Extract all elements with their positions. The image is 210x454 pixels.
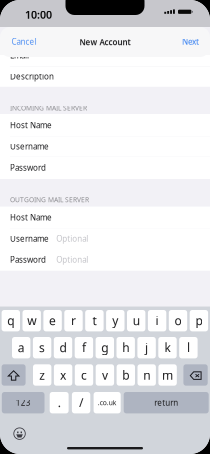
staticText: i xyxy=(156,313,159,329)
button[interactable]: k xyxy=(158,337,177,358)
staticText: e xyxy=(49,313,56,329)
button[interactable]: Description xyxy=(0,66,210,86)
button[interactable]: 123 xyxy=(2,392,44,413)
staticText: c xyxy=(81,367,87,383)
button[interactable]: r xyxy=(64,310,83,331)
staticText: r xyxy=(71,313,76,329)
staticText: o xyxy=(174,313,181,329)
button[interactable]: l xyxy=(179,337,198,358)
button[interactable]: Shift xyxy=(2,364,26,386)
staticText: w xyxy=(27,313,36,329)
staticText: OUTGOING MAIL SERVER xyxy=(10,195,89,204)
staticText: u xyxy=(133,313,140,329)
staticText: Host Name xyxy=(10,120,52,130)
staticText: 10:00 xyxy=(25,8,52,22)
staticText: .co.uk xyxy=(98,398,117,407)
staticText: Optional xyxy=(56,233,88,244)
staticText: Password xyxy=(10,162,46,173)
button[interactable]: b xyxy=(117,364,135,386)
button[interactable]: d xyxy=(54,337,72,358)
button[interactable]: . xyxy=(50,392,69,413)
button[interactable]: Email xyxy=(0,45,210,65)
button[interactable]: n xyxy=(137,364,156,386)
button[interactable]: Emoji keyboard xyxy=(14,428,25,439)
button[interactable]: Username xyxy=(0,136,210,156)
staticText: v xyxy=(102,367,108,383)
button[interactable]: Cancel xyxy=(12,37,52,46)
button[interactable]: f xyxy=(75,337,93,358)
button[interactable]: z xyxy=(33,364,51,386)
staticText: Cancel xyxy=(12,36,37,47)
staticText: x xyxy=(60,367,66,383)
staticText: t xyxy=(92,313,96,329)
staticText: / xyxy=(79,395,83,411)
staticText: return xyxy=(154,397,178,408)
button[interactable]: / xyxy=(72,392,90,413)
button[interactable]: m xyxy=(158,364,177,386)
staticText: h xyxy=(122,340,129,356)
button[interactable]: Host Name xyxy=(0,114,210,136)
button[interactable]: Password xyxy=(0,249,210,270)
staticText: . xyxy=(58,395,61,411)
button[interactable]: Username xyxy=(0,228,210,249)
button[interactable]: x xyxy=(54,364,72,386)
button[interactable]: Delete xyxy=(183,364,208,386)
button[interactable]: o xyxy=(169,310,187,331)
button[interactable]: t xyxy=(85,310,104,331)
button[interactable]: u xyxy=(127,310,145,331)
staticText: b xyxy=(122,367,129,383)
staticText: Next xyxy=(182,36,199,47)
staticText: INCOMING MAIL SERVER xyxy=(10,104,87,112)
staticText: m xyxy=(162,367,173,383)
staticText: s xyxy=(39,340,45,356)
staticText: l xyxy=(187,340,190,356)
staticText: n xyxy=(143,367,150,383)
button[interactable]: j xyxy=(137,337,156,358)
staticText: z xyxy=(39,367,45,383)
button[interactable]: w xyxy=(22,310,41,331)
button[interactable]: q xyxy=(2,310,20,331)
staticText: g xyxy=(101,340,108,356)
button[interactable]: a xyxy=(12,337,30,358)
staticText: New Account xyxy=(79,37,130,47)
button[interactable]: y xyxy=(106,310,124,331)
staticText: p xyxy=(195,313,202,329)
staticText: y xyxy=(112,313,118,329)
button[interactable]: e xyxy=(43,310,62,331)
staticText: Description xyxy=(10,71,54,82)
staticText: j xyxy=(145,340,148,356)
staticText: Optional xyxy=(56,254,88,265)
staticText: a xyxy=(18,340,25,356)
staticText: Host Name xyxy=(10,212,52,223)
staticText: Username xyxy=(10,233,49,244)
button[interactable]: c xyxy=(75,364,93,386)
staticText: d xyxy=(59,340,66,356)
button[interactable]: Next xyxy=(159,37,199,46)
button[interactable]: h xyxy=(116,337,135,358)
button[interactable]: return xyxy=(124,392,209,413)
button[interactable]: .co.uk xyxy=(94,392,121,413)
staticText: f xyxy=(82,340,86,356)
staticText: Email xyxy=(10,50,29,61)
button[interactable]: Password xyxy=(0,156,210,179)
button[interactable]: i xyxy=(148,310,166,331)
staticText: k xyxy=(164,340,170,356)
staticText: 123 xyxy=(16,397,31,408)
button[interactable]: s xyxy=(33,337,51,358)
staticText: q xyxy=(7,313,14,329)
staticText: Username xyxy=(10,141,49,152)
button[interactable]: g xyxy=(96,337,114,358)
button[interactable]: p xyxy=(190,310,208,331)
button[interactable]: Host Name xyxy=(0,207,210,228)
button[interactable]: v xyxy=(96,364,114,386)
staticText: Password xyxy=(10,254,46,265)
